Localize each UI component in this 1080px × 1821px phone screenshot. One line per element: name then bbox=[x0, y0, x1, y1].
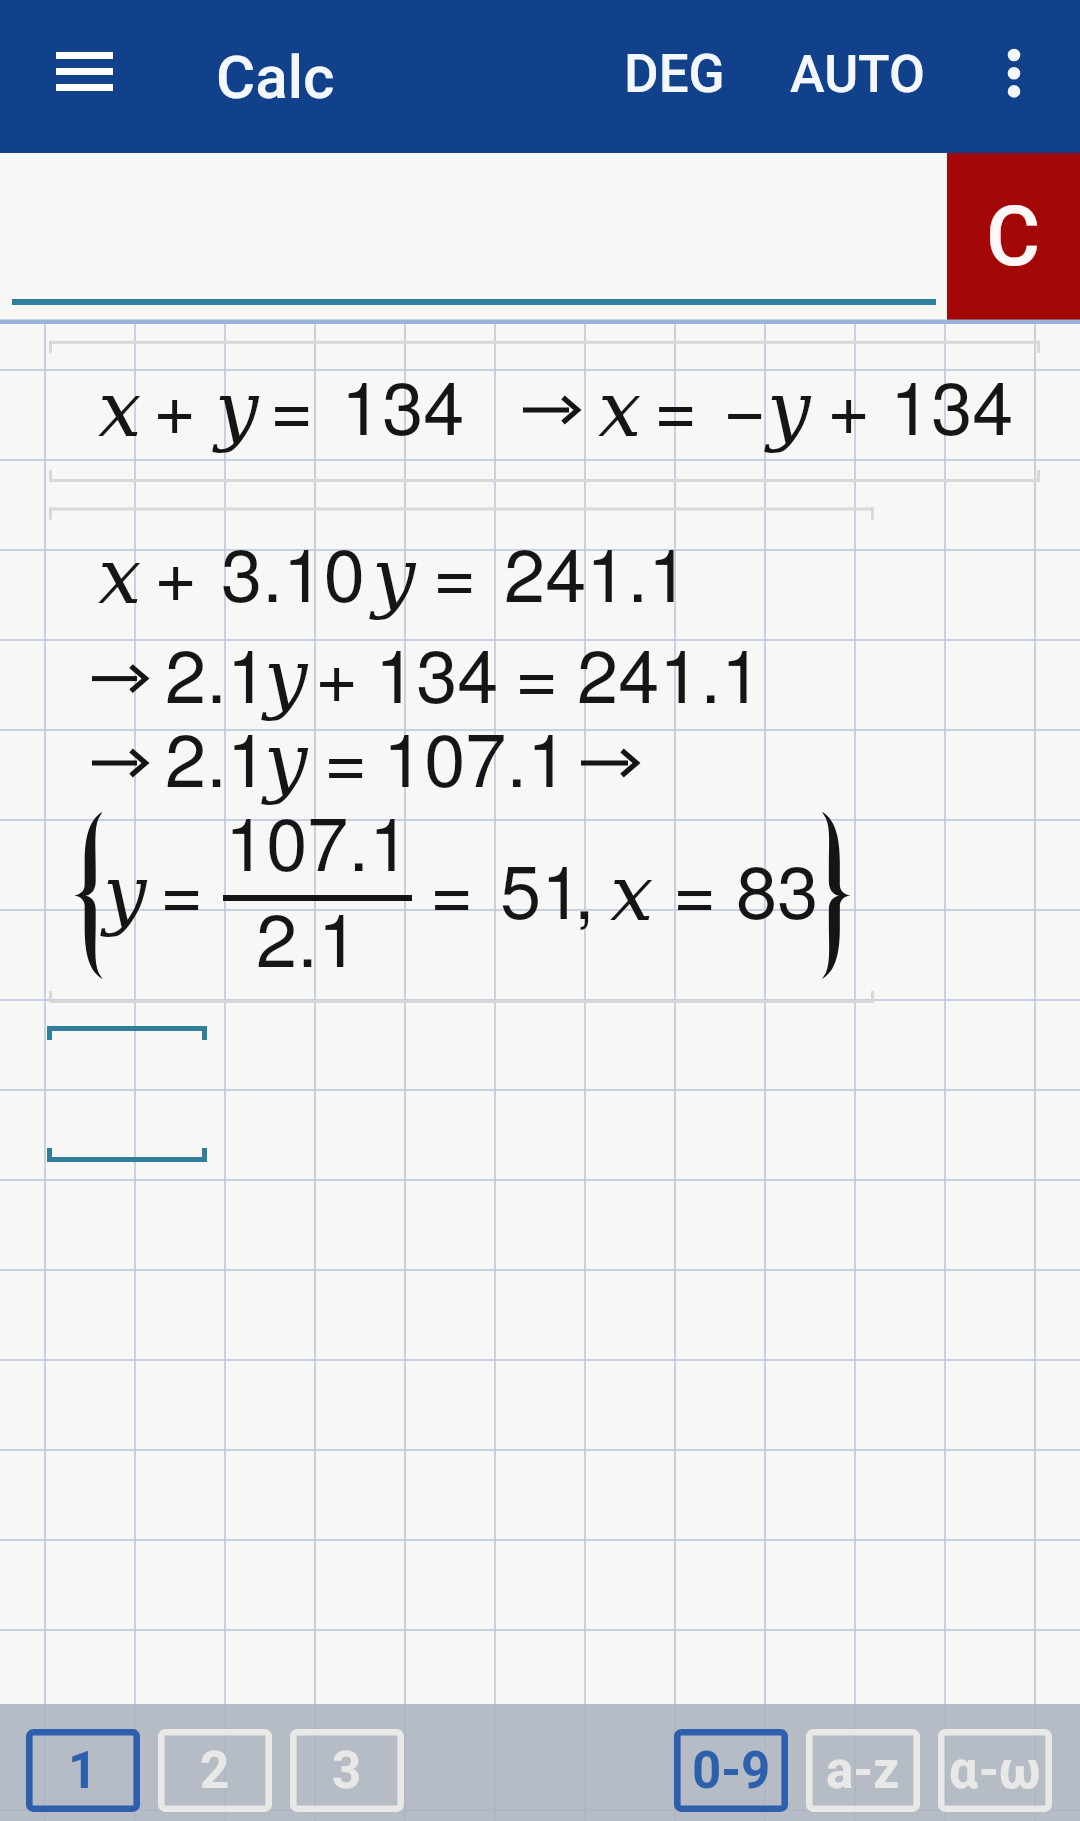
staticText: = bbox=[673, 834, 717, 940]
button[interactable]: C bbox=[947, 153, 1080, 320]
button[interactable]: 3 bbox=[290, 1729, 404, 1812]
staticText: 107.1 bbox=[225, 786, 411, 892]
staticText: 241.1 bbox=[504, 517, 690, 623]
staticText: y bbox=[264, 633, 308, 723]
staticText: 1 bbox=[68, 1741, 98, 1801]
button[interactable]: a-z bbox=[806, 1729, 920, 1812]
staticText: 134 bbox=[375, 618, 499, 724]
staticText: 134 bbox=[341, 350, 465, 456]
staticText: = bbox=[654, 350, 698, 456]
staticText: AUTO bbox=[790, 44, 925, 105]
staticText: a-z bbox=[826, 1741, 900, 1801]
staticText: 0-9 bbox=[692, 1741, 771, 1801]
staticText: = bbox=[160, 834, 204, 940]
button[interactable]: Open navigation drawer bbox=[20, 20, 140, 132]
staticText: + bbox=[154, 517, 198, 623]
staticText: , bbox=[574, 834, 595, 940]
staticText: = bbox=[324, 702, 368, 808]
button[interactable]: DEG bbox=[594, 18, 754, 130]
staticText: − bbox=[723, 350, 767, 456]
staticText: y bbox=[767, 365, 811, 455]
staticText: C bbox=[986, 188, 1041, 285]
staticText: x bbox=[98, 365, 142, 455]
button[interactable]: AUTO bbox=[775, 18, 940, 130]
staticText: ɑ-ω bbox=[949, 1741, 1041, 1801]
staticText: + bbox=[153, 350, 197, 456]
staticText: 2 bbox=[200, 1741, 230, 1801]
staticText: y bbox=[215, 365, 259, 455]
staticText: x bbox=[610, 849, 654, 939]
staticText: y bbox=[372, 532, 416, 622]
staticText: 2.1 bbox=[165, 618, 268, 724]
staticText: 51 bbox=[500, 834, 583, 940]
button[interactable]: 1 bbox=[26, 1729, 140, 1812]
staticText: y bbox=[264, 717, 308, 807]
staticText: x bbox=[598, 365, 642, 455]
button[interactable]: 0-9 bbox=[674, 1729, 788, 1812]
staticText: 134 bbox=[890, 350, 1014, 456]
staticText: DEG bbox=[624, 43, 725, 105]
staticText: y bbox=[103, 849, 147, 939]
staticText: = bbox=[433, 517, 477, 623]
staticText: 107.1 bbox=[383, 702, 569, 808]
staticText: 3 bbox=[332, 1741, 362, 1801]
staticText: 2.1 bbox=[256, 882, 359, 988]
staticText: 241.1 bbox=[577, 618, 763, 724]
staticText: = bbox=[270, 350, 314, 456]
staticText: = bbox=[515, 618, 559, 724]
button[interactable]: ɑ-ω bbox=[938, 1729, 1052, 1812]
staticText: Calc bbox=[216, 42, 335, 112]
staticText: 83 bbox=[736, 834, 819, 940]
staticText: = bbox=[430, 834, 474, 940]
staticText: 3.10 bbox=[221, 517, 366, 623]
staticText: x bbox=[98, 532, 142, 622]
button[interactable]: More options bbox=[960, 20, 1068, 132]
staticText: + bbox=[315, 618, 359, 724]
staticText: + bbox=[827, 350, 871, 456]
button[interactable]: 2 bbox=[158, 1729, 272, 1812]
staticText: 2.1 bbox=[165, 702, 268, 808]
